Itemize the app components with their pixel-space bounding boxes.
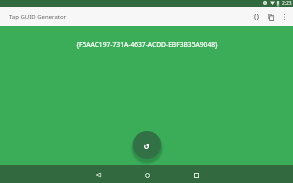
button[interactable]: Generate (133, 131, 161, 159)
button[interactable]: Format braces (248, 9, 264, 25)
staticText: {F5AAC197-731A-4637-ACDD-EBF3B35A9048} (76, 40, 218, 49)
staticText: Tap GUID Generator (9, 13, 67, 21)
button[interactable]: Recents (188, 167, 204, 183)
staticText: 2:23 (282, 0, 292, 7)
button[interactable]: Back (90, 167, 106, 183)
button[interactable]: Copy (263, 9, 279, 25)
button[interactable]: More options (276, 9, 292, 25)
button[interactable]: Home (139, 167, 155, 183)
